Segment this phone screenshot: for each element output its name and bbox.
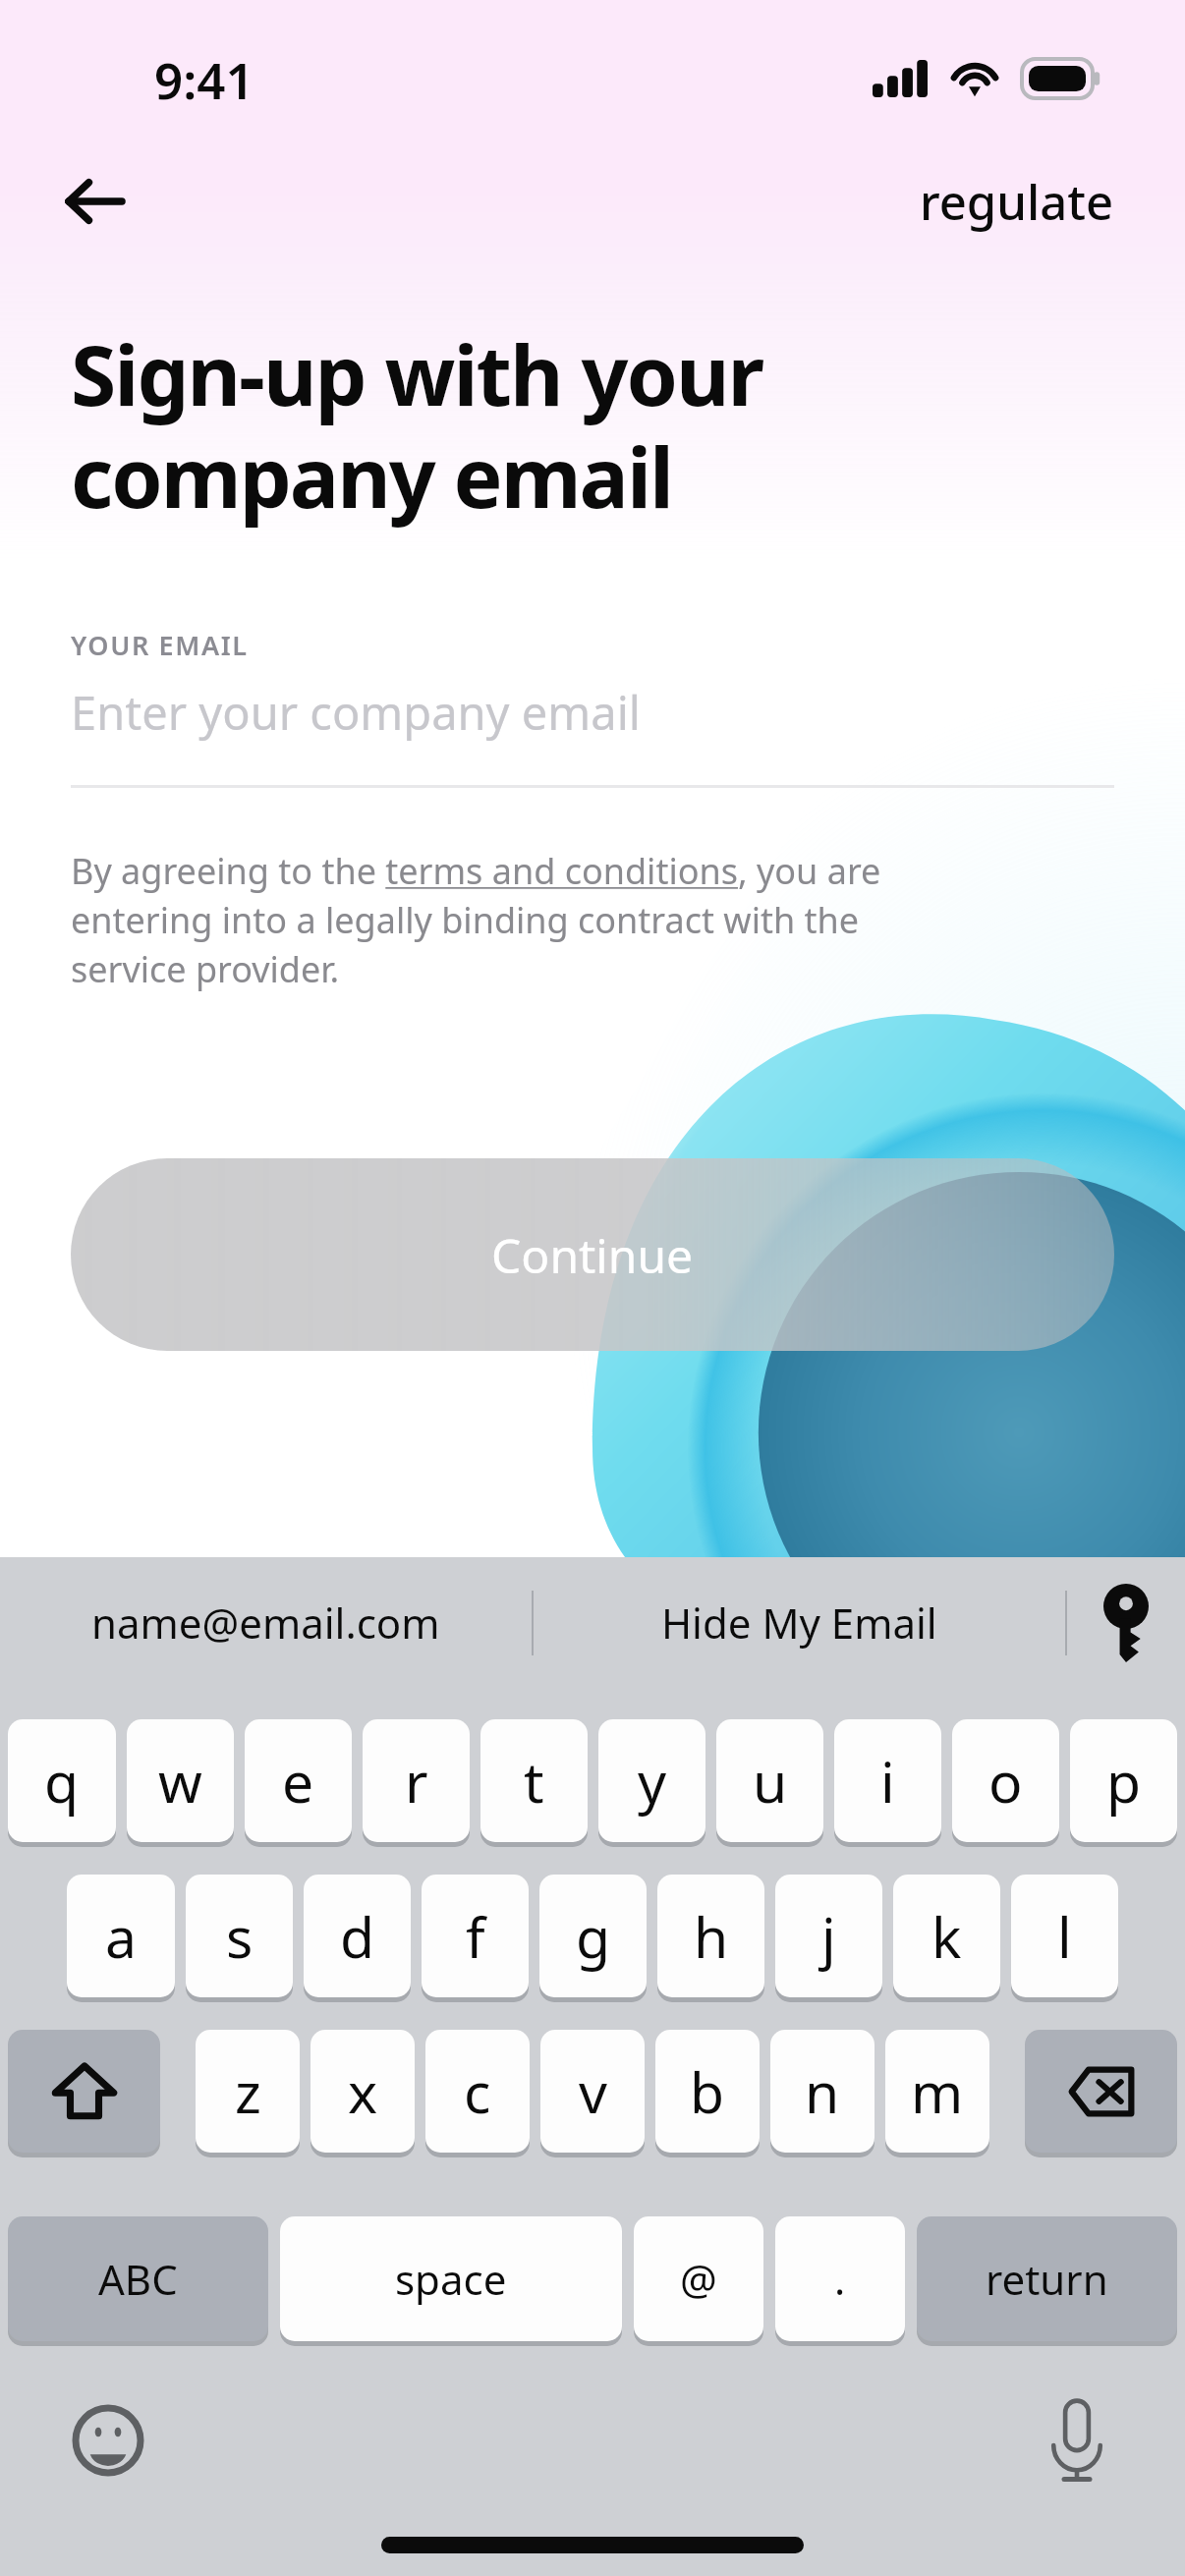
staticText: i (880, 1743, 895, 1820)
staticText: t (524, 1743, 544, 1820)
button[interactable]: u (716, 1719, 823, 1842)
staticText: f (466, 1898, 485, 1975)
staticText: return (986, 2251, 1108, 2307)
button[interactable]: h (657, 1875, 764, 1997)
button[interactable]: t (480, 1719, 588, 1842)
staticText: @ (680, 2251, 717, 2307)
button[interactable]: Continue (71, 1158, 1114, 1351)
staticText: k (931, 1898, 962, 1975)
staticText: l (1057, 1898, 1072, 1975)
button[interactable]: YOUR EMAIL (71, 627, 1114, 788)
button[interactable]: Passwords (1067, 1557, 1185, 1688)
staticText: . (834, 2251, 846, 2307)
button[interactable]: d (304, 1875, 411, 1997)
staticText: z (235, 2053, 261, 2130)
button[interactable]: a (67, 1875, 175, 1997)
staticText: Enter your company email (71, 681, 641, 744)
button[interactable]: z (196, 2030, 300, 2153)
staticText: b (690, 2053, 725, 2130)
button[interactable]: r (363, 1719, 470, 1842)
button[interactable]: m (885, 2030, 989, 2153)
button[interactable]: e (245, 1719, 352, 1842)
button[interactable]: w (127, 1719, 234, 1842)
button[interactable]: Back (47, 154, 141, 249)
button[interactable]: y (598, 1719, 705, 1842)
button[interactable]: b (655, 2030, 760, 2153)
button[interactable]: . (775, 2216, 905, 2341)
button[interactable]: n (770, 2030, 875, 2153)
button[interactable]: ABC (8, 2216, 268, 2341)
staticText: r (405, 1743, 428, 1820)
button[interactable]: Emoji (61, 2393, 155, 2488)
button[interactable]: Shift (8, 2030, 160, 2153)
button[interactable]: By agreeing to the terms and conditions,… (71, 847, 974, 993)
button[interactable]: Hide My Email (534, 1557, 1065, 1688)
staticText: a (105, 1898, 137, 1975)
staticText: x (348, 2053, 378, 2130)
staticText: g (576, 1898, 611, 1975)
staticText: o (988, 1743, 1023, 1820)
button[interactable]: x (310, 2030, 415, 2153)
staticText: space (395, 2251, 507, 2307)
staticText: u (753, 1743, 788, 1820)
button[interactable]: regulate (920, 169, 1114, 235)
button[interactable]: k (893, 1875, 1000, 1997)
button[interactable]: space (280, 2216, 622, 2341)
staticText: y (638, 1743, 667, 1820)
button[interactable]: q (8, 1719, 116, 1842)
staticText: q (44, 1743, 80, 1820)
staticText: w (158, 1743, 202, 1820)
button[interactable]: @ (634, 2216, 763, 2341)
staticText: c (464, 2053, 491, 2130)
button[interactable]: l (1011, 1875, 1118, 1997)
staticText: e (282, 1743, 314, 1820)
button[interactable]: Backspace (1025, 2030, 1177, 2153)
button[interactable]: g (539, 1875, 647, 1997)
button[interactable]: p (1070, 1719, 1177, 1842)
staticText: s (226, 1898, 254, 1975)
staticText: name@email.com (91, 1595, 440, 1651)
staticText: 9:41 (154, 45, 254, 113)
button[interactable]: j (775, 1875, 882, 1997)
staticText: j (821, 1898, 836, 1975)
staticText: Continue (491, 1223, 694, 1287)
button[interactable]: o (952, 1719, 1059, 1842)
button[interactable]: f (422, 1875, 529, 1997)
button[interactable]: v (540, 2030, 645, 2153)
button[interactable]: c (425, 2030, 530, 2153)
staticText: ABC (98, 2251, 178, 2307)
staticText: Sign-up with your company email (71, 317, 763, 532)
staticText: n (805, 2053, 840, 2130)
staticText: v (579, 2053, 607, 2130)
button[interactable]: name@email.com (0, 1557, 532, 1688)
staticText: m (911, 2053, 964, 2130)
staticText: p (1106, 1743, 1142, 1820)
button[interactable]: Dictation (1030, 2393, 1124, 2488)
staticText: YOUR EMAIL (71, 627, 249, 663)
staticText: d (340, 1898, 375, 1975)
button[interactable]: return (917, 2216, 1177, 2341)
button[interactable]: s (186, 1875, 293, 1997)
staticText: h (694, 1898, 729, 1975)
staticText: Hide My Email (661, 1595, 937, 1651)
button[interactable]: i (834, 1719, 941, 1842)
